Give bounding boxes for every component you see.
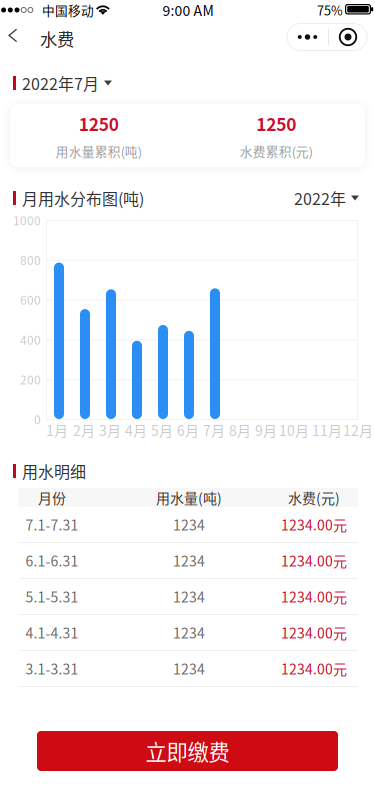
staticText: 75% — [317, 1, 343, 19]
staticText: 7月 — [203, 420, 225, 440]
staticText: 中国移动 — [42, 1, 94, 19]
staticText: 6月 — [177, 420, 199, 440]
button[interactable]: Back — [0, 20, 30, 57]
staticText: 水费 — [40, 26, 74, 51]
staticText: 1234 — [173, 622, 205, 643]
staticText: 月用水分布图(吨) — [22, 186, 144, 210]
staticText: 1234.00元 — [281, 550, 347, 571]
staticText: 1234.00元 — [281, 514, 347, 535]
button[interactable]: More — [287, 23, 328, 50]
staticText: 1234.00元 — [281, 658, 347, 679]
staticText: 5.1-5.31 — [25, 586, 78, 607]
staticText: 2022年7月 — [22, 71, 99, 95]
button[interactable]: 2022年7月 — [16, 73, 112, 93]
staticText: 立即缴费 — [145, 736, 229, 766]
staticText: 3.1-3.31 — [25, 658, 78, 679]
staticText: 10月 — [279, 420, 309, 440]
staticText: 2022年 — [294, 186, 346, 210]
staticText: 4月 — [125, 420, 147, 440]
staticText: 12月 — [343, 420, 373, 440]
staticText: 1234 — [173, 658, 205, 679]
staticText: 6.1-6.31 — [25, 550, 78, 571]
staticText: 1000 — [13, 211, 41, 229]
staticText: 1250 — [256, 111, 296, 136]
staticText: 1234.00元 — [281, 622, 347, 643]
staticText: 4.1-4.31 — [25, 622, 78, 643]
staticText: 2月 — [73, 420, 95, 440]
button[interactable]: 立即缴费 — [37, 731, 338, 771]
staticText: 800 — [20, 251, 41, 268]
staticText: 3月 — [99, 420, 121, 440]
staticText: 9:00 AM — [162, 0, 213, 20]
staticText: 8月 — [229, 420, 251, 440]
staticText: 用水明细 — [22, 459, 86, 483]
staticText: 1月 — [46, 420, 68, 440]
staticText: 0 — [34, 410, 41, 428]
staticText: 1234 — [173, 514, 205, 535]
staticText: 9月 — [255, 420, 277, 440]
staticText: 水费(元) — [288, 487, 340, 508]
staticText: 1234 — [173, 550, 205, 571]
staticText: 600 — [20, 291, 41, 308]
staticText: 400 — [20, 331, 41, 348]
button[interactable]: 2022年 — [294, 188, 359, 208]
button[interactable]: Close — [329, 23, 367, 50]
staticText: 1250 — [79, 111, 119, 136]
staticText: 1234 — [173, 586, 205, 607]
staticText: 7.1-7.31 — [25, 514, 78, 535]
staticText: 月份 — [38, 487, 66, 508]
staticText: 用水量累积(吨) — [56, 142, 142, 160]
staticText: 11月 — [312, 420, 342, 440]
staticText: 200 — [20, 370, 41, 388]
staticText: 水费累积(元) — [240, 142, 313, 160]
staticText: 1234.00元 — [281, 586, 347, 607]
staticText: 5月 — [151, 420, 173, 440]
staticText: 用水量(吨) — [156, 487, 222, 508]
